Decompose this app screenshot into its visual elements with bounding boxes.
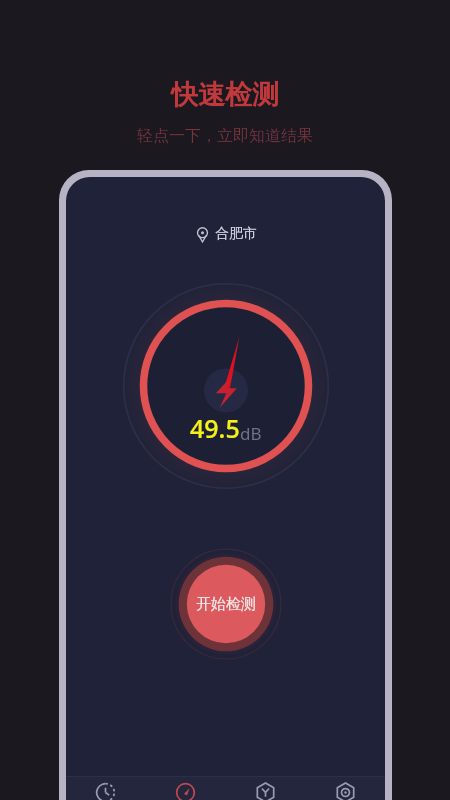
staticText: dB [240, 422, 262, 445]
button[interactable]: 历史 [66, 777, 145, 800]
staticText: 快速检测 [171, 78, 279, 112]
staticText: 轻点一下，立即知道结果 [137, 126, 313, 146]
staticText: 合肥市 [215, 225, 257, 243]
staticText: 49.5 [190, 411, 240, 445]
staticText: 开始检测 [196, 595, 256, 614]
button[interactable]: 合肥市 [66, 225, 385, 243]
button[interactable]: 工具 [225, 777, 305, 800]
button[interactable]: 开始检测 [170, 548, 282, 660]
button[interactable]: 设置 [305, 777, 385, 800]
button[interactable]: 检测 [145, 777, 225, 800]
